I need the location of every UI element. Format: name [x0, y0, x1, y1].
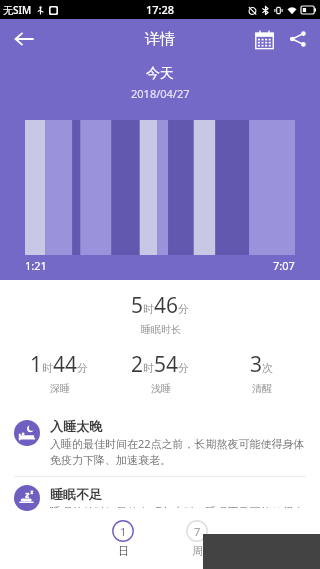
- staticText: 浅睡: [151, 382, 171, 395]
- staticText: 1:21: [25, 258, 47, 273]
- staticText: 5时46分: [131, 291, 190, 320]
- button[interactable]: Back: [8, 23, 40, 55]
- staticText: 7:07: [273, 258, 295, 273]
- staticText: 2时54分: [131, 350, 190, 379]
- staticText: 周: [192, 544, 203, 558]
- button[interactable]: 睡眠不足: [0, 477, 320, 517]
- staticText: 睡眠不足: [50, 486, 102, 502]
- staticText: 日: [118, 544, 129, 558]
- button[interactable]: 7: [180, 520, 214, 558]
- button[interactable]: Share: [282, 23, 314, 55]
- staticText: 7: [194, 524, 201, 539]
- button[interactable]: Calendar: [248, 23, 280, 55]
- staticText: 今天: [146, 65, 174, 83]
- staticText: 入睡太晚: [50, 418, 102, 434]
- button[interactable]: 入睡太晚: [0, 409, 320, 476]
- staticText: 睡眠时长: [141, 323, 181, 336]
- button[interactable]: 1: [106, 520, 140, 558]
- staticText: 1: [120, 524, 127, 539]
- staticText: 清醒: [252, 382, 272, 395]
- staticText: 睡眠的总时间最佳在7到9小时，睡眠不足可能使得身体免疫力下降、反应迟缓。: [50, 504, 306, 508]
- staticText: 无SIM: [3, 3, 32, 17]
- staticText: 入睡的最佳时间在22点之前，长期熬夜可能使得身体免疫力下降、加速衰老。: [50, 436, 306, 467]
- staticText: 17:28: [146, 2, 175, 17]
- staticText: 1时44分: [30, 350, 89, 379]
- staticText: 3次: [250, 350, 274, 379]
- staticText: 详情: [145, 30, 175, 49]
- staticText: 2018/04/27: [131, 86, 190, 101]
- staticText: 深睡: [50, 382, 70, 395]
